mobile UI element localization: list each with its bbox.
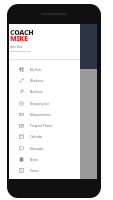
- staticText: john.doe@client.com: [10, 50, 31, 53]
- staticText: Shopping List: [30, 102, 49, 106]
- staticText: COACH: [10, 28, 34, 38]
- staticText: Calendar: [30, 135, 43, 139]
- button[interactable]: My Hub: [9, 64, 80, 75]
- button[interactable]: Progress Photos: [9, 120, 80, 131]
- staticText: MIKE: [10, 34, 28, 44]
- button[interactable]: Workouts: [9, 75, 80, 86]
- button[interactable]: Shopping List: [9, 98, 80, 109]
- button[interactable]: Notes: [9, 154, 80, 165]
- staticText: My Hub: [30, 68, 41, 72]
- staticText: Forms: [30, 169, 39, 173]
- button[interactable]: Forms: [9, 165, 80, 176]
- button[interactable]: Nutrition: [9, 86, 80, 97]
- staticText: Progress Photos: [30, 124, 53, 128]
- staticText: Messages: [30, 147, 44, 151]
- staticText: Nutrition: [30, 90, 43, 94]
- staticText: John Doe: [10, 45, 23, 49]
- staticText: Workouts: [30, 79, 44, 83]
- button[interactable]: Messages: [9, 143, 80, 154]
- staticText: Notes: [30, 158, 39, 162]
- button[interactable]: Calendar: [9, 131, 80, 142]
- staticText: Measurements: [30, 113, 51, 117]
- button[interactable]: Measurements: [9, 109, 80, 120]
